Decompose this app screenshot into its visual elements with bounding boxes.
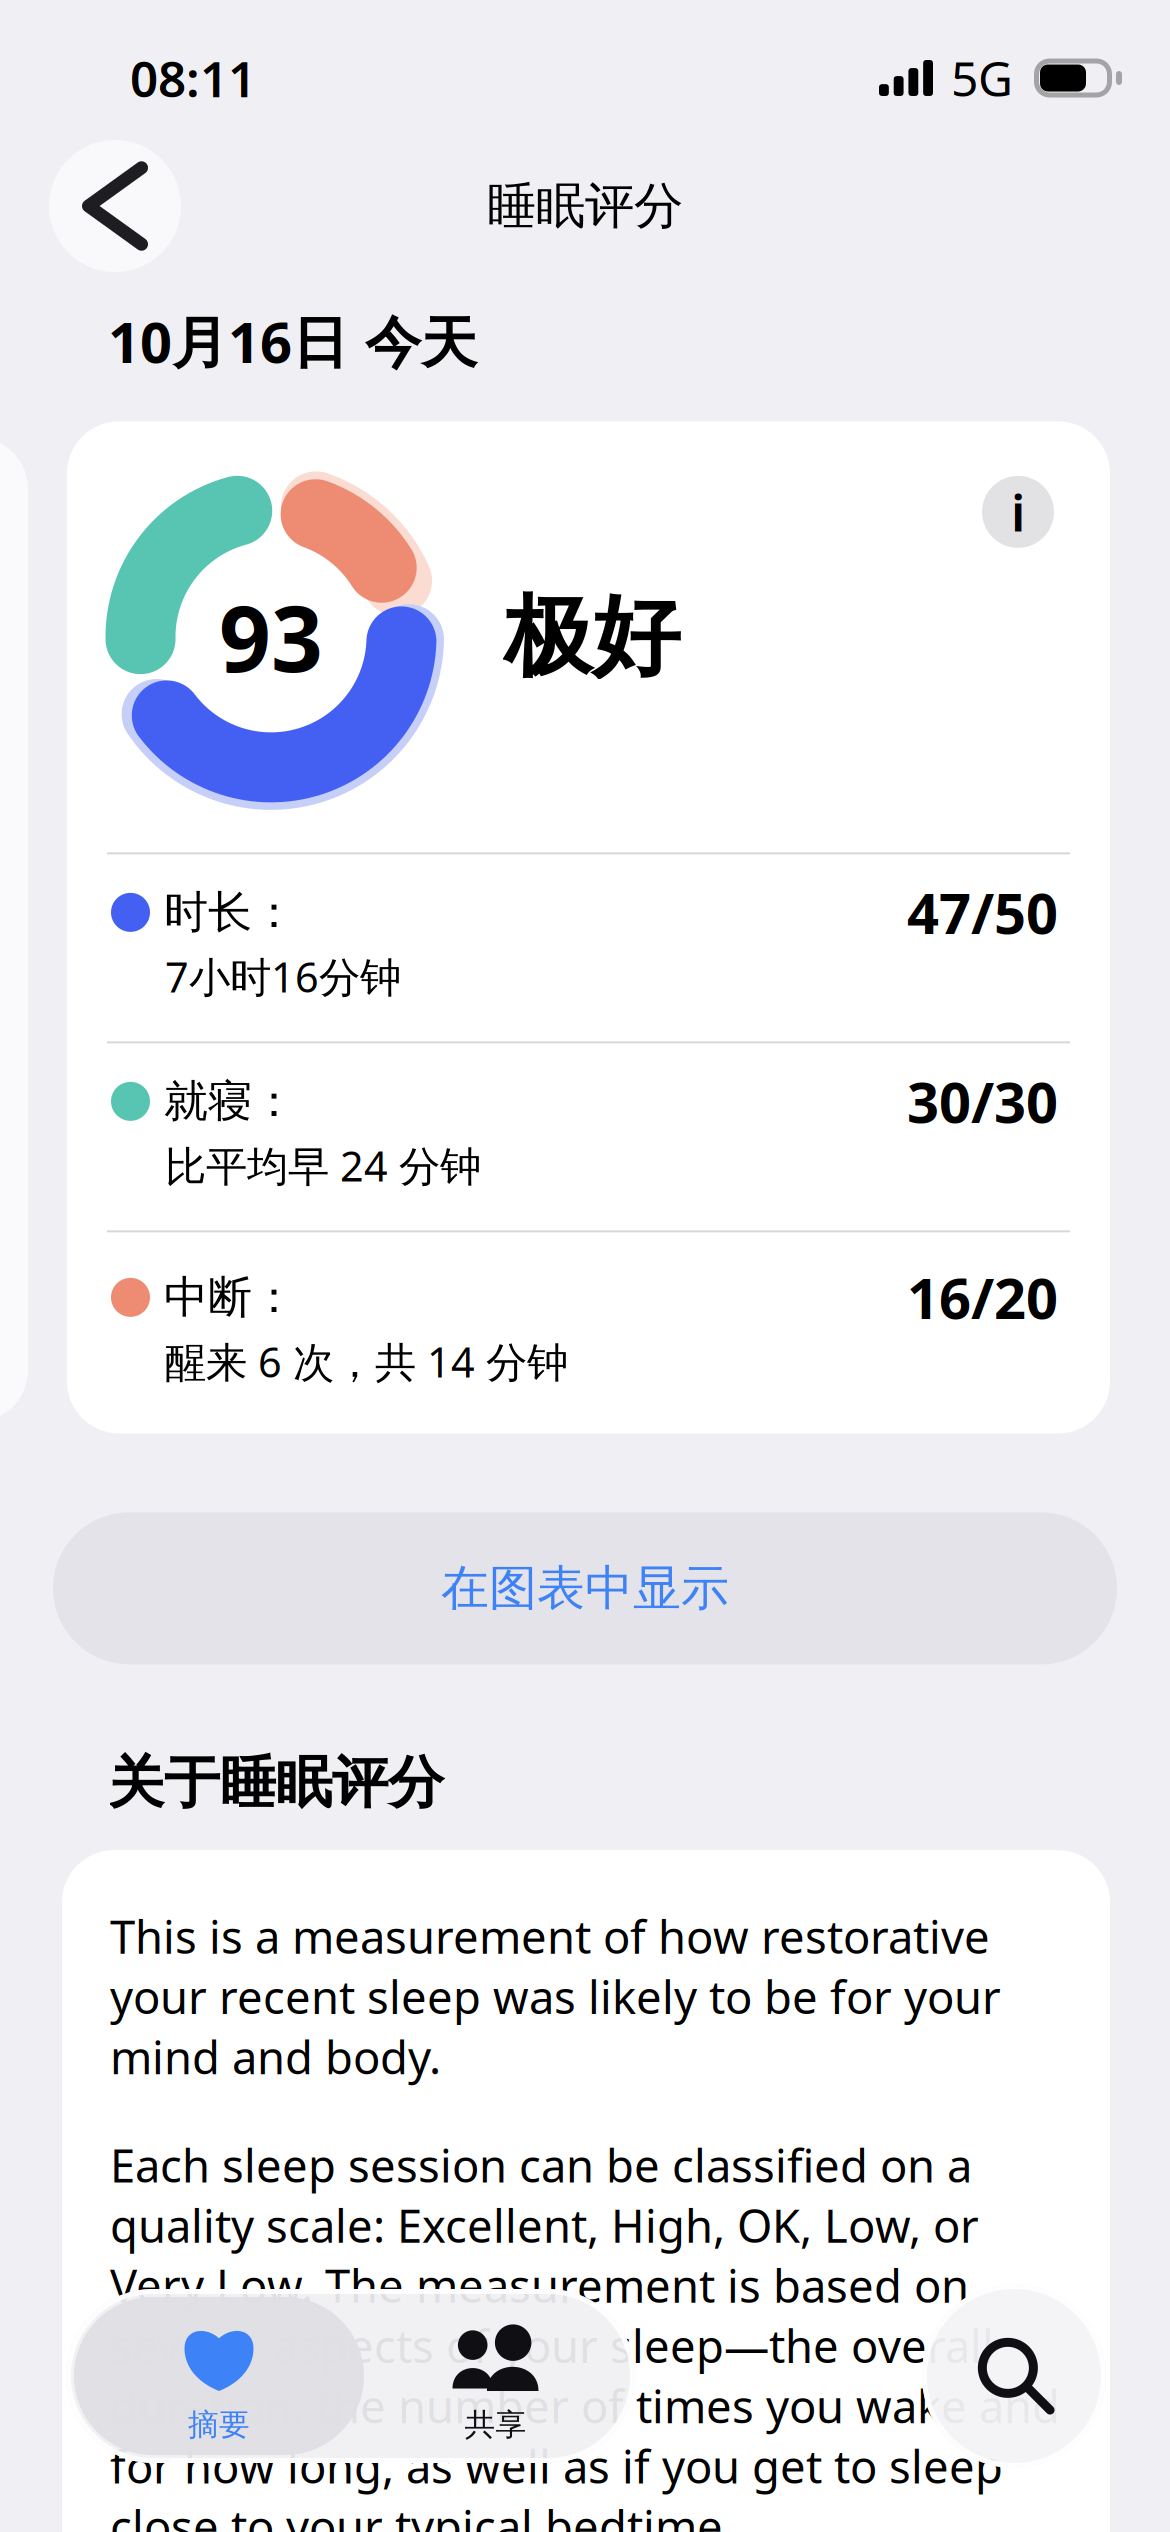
- staticText: 中断：: [164, 1270, 296, 1324]
- staticText: 比平均早 24 分钟: [165, 1138, 481, 1193]
- staticText: 47/50: [907, 875, 1058, 950]
- staticText: 16/20: [907, 1260, 1058, 1335]
- button[interactable]: 共享: [364, 2297, 627, 2455]
- staticText: 共享: [464, 2406, 526, 2444]
- button[interactable]: 返回: [49, 140, 181, 272]
- staticText: 极好: [504, 583, 680, 691]
- staticText: 7小时16分钟: [165, 949, 401, 1004]
- staticText: 93: [219, 577, 323, 697]
- staticText: 在图表中显示: [441, 1559, 729, 1618]
- staticText: 醒来 6 次，共 14 分钟: [165, 1334, 568, 1389]
- staticText: This is a measurement of how restorative…: [110, 1906, 1001, 2087]
- staticText: 08:11: [130, 45, 256, 111]
- staticText: 10月16日 今天: [108, 304, 477, 378]
- button[interactable]: 详细信息: [982, 476, 1054, 548]
- staticText: i: [1011, 478, 1025, 545]
- staticText: 睡眠评分: [487, 176, 683, 236]
- staticText: 30/30: [907, 1064, 1058, 1139]
- staticText: 关于睡眠评分: [108, 1748, 444, 1817]
- staticText: 就寝：: [164, 1074, 296, 1128]
- button[interactable]: 摘要: [74, 2297, 364, 2455]
- staticText: 时长：: [164, 885, 296, 939]
- button[interactable]: 搜索: [922, 2284, 1106, 2468]
- staticText: Each sleep session can be classified on …: [110, 2135, 1060, 2532]
- staticText: 摘要: [188, 2406, 250, 2444]
- staticText: 5G: [951, 46, 1013, 110]
- button[interactable]: 在图表中显示: [53, 1512, 1117, 1664]
